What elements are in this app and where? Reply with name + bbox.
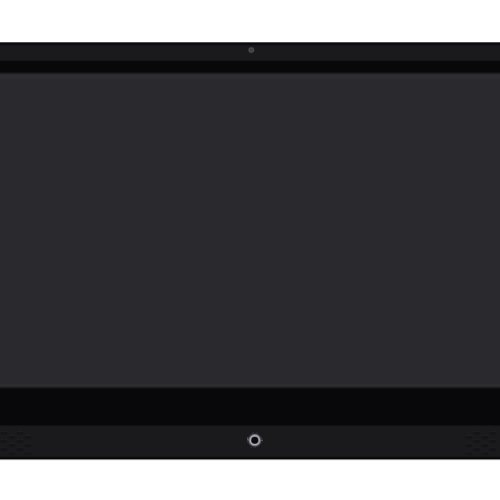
button[interactable]: Home xyxy=(244,429,266,451)
button[interactable]: Front camera xyxy=(244,43,258,57)
